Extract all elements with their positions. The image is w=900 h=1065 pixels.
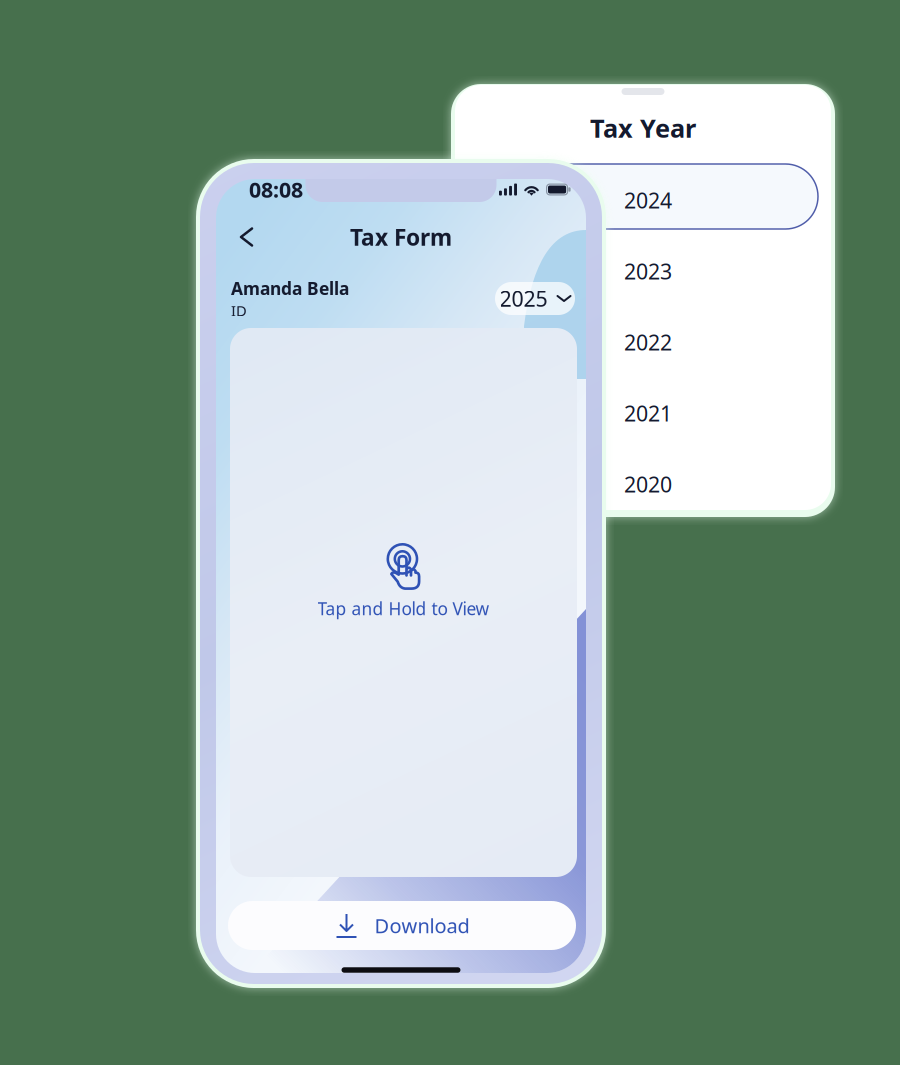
- staticText: Download: [374, 912, 469, 939]
- staticText: 2023: [624, 257, 672, 285]
- staticText: Tax Year: [590, 111, 696, 145]
- button[interactable]: 2022: [455, 303, 831, 374]
- staticText: 2024: [624, 186, 672, 214]
- staticText: Tap and Hold to View: [317, 597, 489, 620]
- button[interactable]: 2024: [455, 161, 831, 232]
- staticText: 2025: [499, 284, 547, 313]
- staticText: 08:08: [249, 175, 303, 204]
- button[interactable]: 2020: [455, 445, 831, 516]
- staticText: 2020: [624, 470, 672, 498]
- staticText: ID: [231, 301, 247, 320]
- button[interactable]: 2025: [495, 282, 575, 315]
- button[interactable]: Back: [228, 215, 265, 258]
- button[interactable]: 2023: [455, 232, 831, 303]
- staticText: Tax Form: [350, 222, 452, 252]
- staticText: 2021: [624, 399, 672, 427]
- button[interactable]: Download: [228, 901, 576, 950]
- staticText: 2022: [624, 328, 672, 356]
- button[interactable]: 2021: [455, 374, 831, 445]
- staticText: Amanda Bella: [231, 277, 349, 300]
